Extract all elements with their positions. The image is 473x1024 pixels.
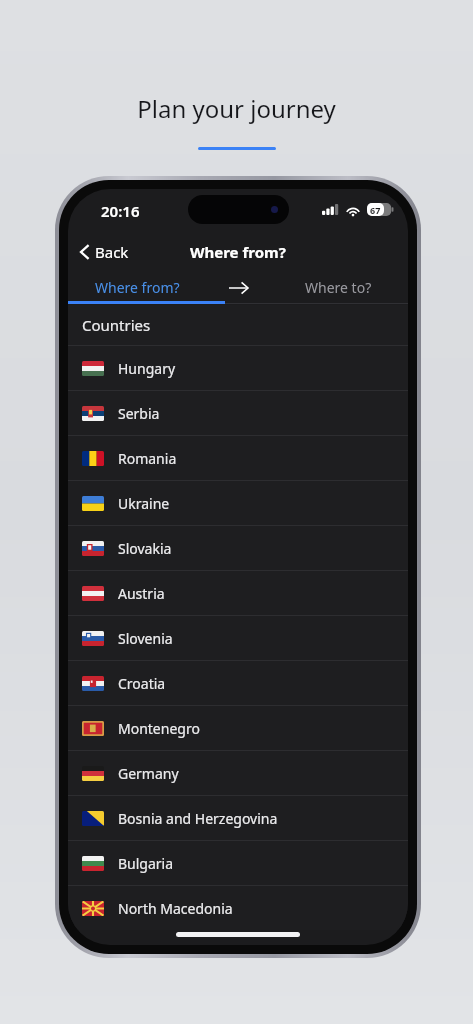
button[interactable]: Where from? (68, 271, 207, 304)
button[interactable]: Austria (68, 571, 408, 615)
staticText: Plan your journey (137, 92, 336, 125)
staticText: Montenegro (118, 719, 200, 738)
button[interactable]: Montenegro (68, 706, 408, 750)
staticText: Where from? (95, 278, 180, 297)
staticText: Ukraine (118, 494, 170, 513)
staticText: Romania (118, 449, 177, 468)
staticText: Croatia (118, 674, 166, 693)
staticText: Hungary (118, 359, 176, 378)
staticText: Austria (118, 584, 165, 603)
staticText: 20:16 (101, 201, 140, 221)
button[interactable]: Bosnia and Herzegovina (68, 796, 408, 840)
button[interactable]: Ukraine (68, 481, 408, 525)
staticText: Bulgaria (118, 854, 174, 873)
staticText: 67 (370, 204, 381, 216)
button[interactable]: Germany (68, 751, 408, 795)
button[interactable]: Bulgaria (68, 841, 408, 885)
staticText: Countries (82, 315, 151, 335)
button[interactable]: Slovenia (68, 616, 408, 660)
staticText: Slovakia (118, 539, 172, 558)
staticText: Back (95, 242, 129, 262)
button[interactable]: Where to? (269, 271, 408, 304)
button[interactable]: North Macedonia (68, 886, 408, 930)
button[interactable]: Hungary (68, 346, 408, 390)
staticText: North Macedonia (118, 899, 233, 918)
button[interactable]: Serbia (68, 391, 408, 435)
staticText: Where from? (190, 242, 286, 262)
button[interactable]: Croatia (68, 661, 408, 705)
button[interactable]: Slovakia (68, 526, 408, 570)
staticText: Bosnia and Herzegovina (118, 809, 278, 828)
staticText: Serbia (118, 404, 160, 423)
staticText: Germany (118, 764, 179, 783)
button[interactable]: Back (74, 238, 135, 266)
staticText: Where to? (305, 278, 372, 297)
button[interactable]: Romania (68, 436, 408, 480)
staticText: Slovenia (118, 629, 173, 648)
